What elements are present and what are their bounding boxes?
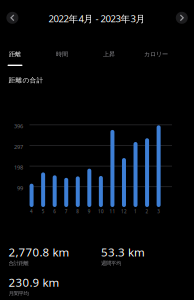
staticText: 12: [121, 208, 127, 215]
staticText: 2: [146, 208, 149, 215]
button[interactable]: 時間: [38, 44, 85, 66]
staticText: 週間平均: [101, 260, 121, 266]
staticText: 上昇: [103, 50, 115, 58]
staticText: 距離: [9, 50, 21, 58]
staticText: 3: [157, 208, 160, 215]
staticText: 5: [42, 208, 45, 215]
staticText: 11: [109, 208, 115, 215]
staticText: 10: [98, 208, 104, 215]
staticText: 距離の合計: [8, 76, 43, 84]
staticText: 99: [17, 184, 23, 192]
staticText: 7: [65, 208, 68, 215]
staticText: 2,770.8 km: [8, 244, 69, 260]
staticText: 1: [134, 208, 137, 215]
staticText: 230.9 km: [8, 275, 59, 290]
button[interactable]: カロリー: [132, 44, 179, 66]
staticText: 8: [76, 208, 79, 215]
staticText: 6: [53, 208, 56, 215]
staticText: 297: [14, 143, 23, 150]
staticText: 月間平均: [8, 290, 28, 297]
staticText: 53.3 km: [101, 244, 145, 260]
staticText: 時間: [56, 50, 68, 58]
staticText: 2022年4月 - 2023年3月: [48, 12, 145, 25]
staticText: カロリー: [144, 50, 168, 58]
button[interactable]: Next period: [170, 6, 194, 30]
staticText: 9: [88, 208, 91, 215]
staticText: 396: [14, 122, 23, 130]
staticText: 合計距離: [8, 260, 28, 266]
staticText: 198: [14, 164, 23, 171]
button[interactable]: 上昇: [85, 44, 132, 66]
button[interactable]: Previous period: [0, 6, 24, 30]
button[interactable]: 距離: [0, 44, 38, 66]
staticText: 4: [30, 208, 33, 215]
